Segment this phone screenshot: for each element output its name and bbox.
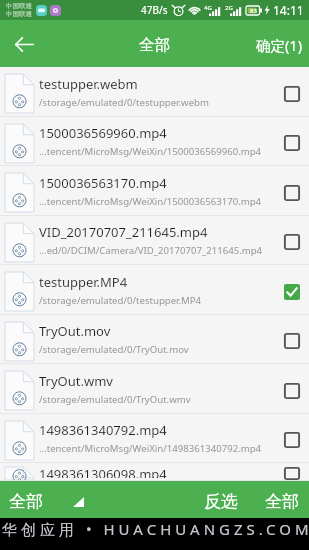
- staticText: 1498361340792.mp4: [39, 421, 167, 439]
- button[interactable]: 全部: [258, 481, 309, 518]
- button[interactable]: 1498361306098.mp4: [0, 463, 309, 481]
- staticText: 83: [250, 7, 257, 15]
- button[interactable]: TryOut.wmv: [0, 364, 309, 414]
- staticText: 1500036569960.mp4: [39, 124, 167, 142]
- button[interactable]: 1500036569960.mp4: [0, 117, 309, 166]
- staticText: 中国联通: [6, 2, 32, 10]
- staticText: VID_20170707_211645.mp4: [39, 223, 208, 241]
- staticText: /storage/emulated/0/TryOut.wmv: [39, 393, 191, 406]
- button[interactable]: 全部: [0, 483, 90, 516]
- staticText: /storage/emulated/0/testupper.MP4: [39, 294, 202, 307]
- button[interactable]: 反选: [197, 481, 245, 518]
- staticText: 2G: [225, 4, 233, 12]
- button[interactable]: testupper.MP4: [0, 265, 309, 315]
- button[interactable]: 1498361340792.mp4: [0, 414, 309, 463]
- staticText: /storage/emulated/0/testupper.webm: [39, 96, 209, 109]
- button[interactable]: 1500036563170.mp4: [0, 166, 309, 216]
- button[interactable]: 确定(1): [251, 28, 307, 60]
- staticText: 全部: [9, 491, 43, 512]
- staticText: ...tencent/MicroMsg/WeiXin/1498361340792…: [39, 442, 262, 455]
- staticText: ...tencent/MicroMsg/WeiXin/1500036563170…: [39, 195, 262, 208]
- staticText: 中国联通: [6, 10, 32, 18]
- staticText: testupper.MP4: [39, 273, 128, 291]
- button[interactable]: Select file: [280, 329, 304, 353]
- button[interactable]: Select file: [280, 230, 304, 254]
- button[interactable]: VID_20170707_211645.mp4: [0, 216, 309, 265]
- staticText: ...ed/0/DCIM/Camera/VID_20170707_211645.…: [39, 244, 263, 257]
- button[interactable]: TryOut.mov: [0, 315, 309, 364]
- button[interactable]: Select file: [280, 181, 304, 205]
- button[interactable]: testupper.webm: [0, 67, 309, 117]
- staticText: 华创应用 • HUACHUANGZS.COM: [2, 519, 309, 538]
- button[interactable]: Select file: [280, 467, 304, 480]
- staticText: 4G: [204, 4, 212, 12]
- staticText: 全部: [139, 35, 170, 55]
- button[interactable]: Select file: [280, 428, 304, 452]
- staticText: 14:11: [273, 2, 304, 18]
- button[interactable]: Select file: [280, 379, 304, 403]
- staticText: TryOut.wmv: [39, 372, 113, 390]
- button[interactable]: Select file: [280, 82, 304, 106]
- button[interactable]: Back: [6, 26, 42, 62]
- staticText: 确定(1): [256, 35, 302, 55]
- staticText: 1498361306098.mp4: [39, 465, 167, 478]
- staticText: 全部: [265, 491, 299, 512]
- button[interactable]: Select file: [280, 131, 304, 155]
- staticText: TryOut.mov: [39, 322, 111, 340]
- staticText: /storage/emulated/0/TryOut.mov: [39, 343, 189, 356]
- staticText: 反选: [204, 491, 238, 512]
- staticText: 1500036563170.mp4: [39, 174, 167, 192]
- staticText: 47B/s: [141, 3, 168, 17]
- staticText: testupper.webm: [39, 75, 138, 93]
- staticText: ...tencent/MicroMsg/WeiXin/1500036569960…: [39, 145, 262, 158]
- button[interactable]: Select file: [280, 280, 304, 304]
